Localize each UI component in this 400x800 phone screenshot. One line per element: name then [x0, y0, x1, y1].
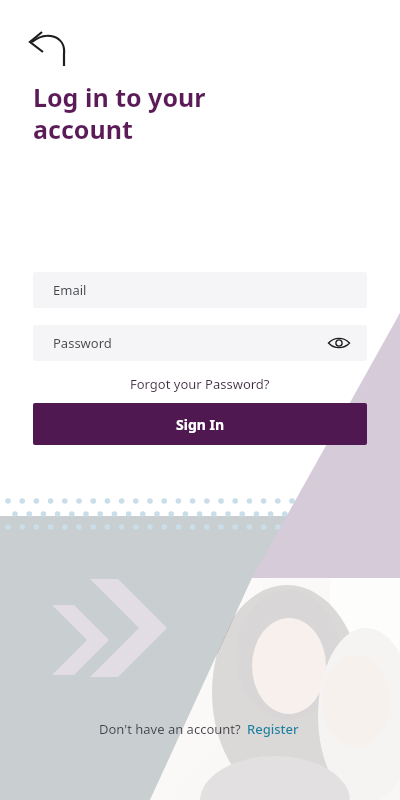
button[interactable]: Email	[33, 272, 367, 308]
staticText: Don't have an account?	[99, 720, 245, 738]
button[interactable]: Show password	[325, 329, 353, 357]
staticText: Email	[53, 281, 87, 299]
staticText: Password	[53, 334, 112, 352]
button[interactable]: Back	[20, 22, 68, 70]
staticText: Sign In	[176, 415, 225, 434]
button[interactable]: Password	[33, 325, 367, 361]
staticText: Log in to your account	[33, 80, 206, 146]
button[interactable]: Sign In	[33, 403, 367, 445]
button[interactable]: Forgot your Password?	[124, 371, 276, 397]
button[interactable]: Register	[245, 716, 301, 742]
